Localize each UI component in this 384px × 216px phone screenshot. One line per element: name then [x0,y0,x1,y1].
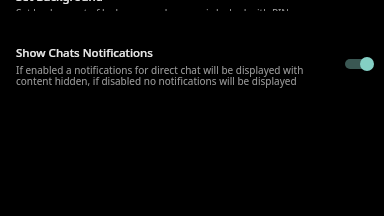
staticText: Show Chats Notifications [16,45,153,61]
staticText: Set Background [16,0,103,5]
staticText: If enabled a notifications for direct ch… [16,63,336,88]
staticText: Set backgrount of lock screen when app i… [16,6,289,11]
button[interactable]: Show Chats Notifications [0,45,384,88]
button[interactable]: Show Chats Notifications toggle [340,52,374,76]
button[interactable]: Set Background [0,0,384,22]
